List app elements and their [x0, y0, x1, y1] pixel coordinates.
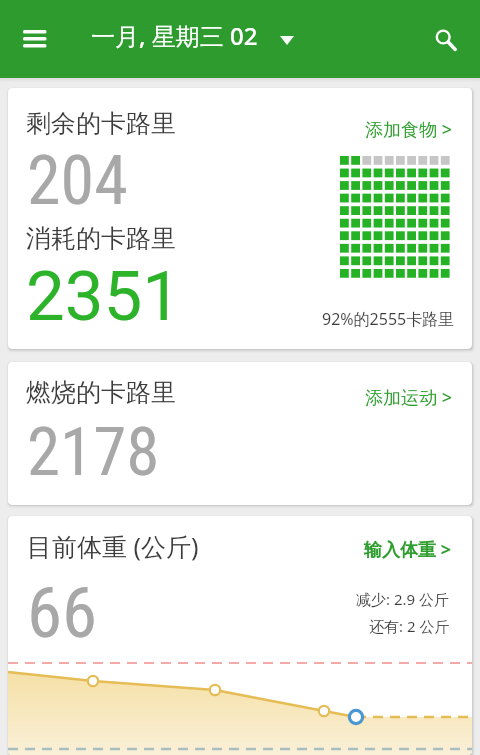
- button[interactable]: [427, 21, 467, 61]
- button[interactable]: 输入体重 >: [364, 537, 451, 562]
- staticText: 剩余的卡路里: [26, 108, 176, 139]
- button[interactable]: 一月, 星期三 02: [91, 0, 258, 78]
- staticText: 204: [27, 141, 128, 221]
- staticText: 减少: 2.9 公斤: [356, 589, 450, 609]
- button[interactable]: 目前体重 (公斤): [8, 516, 472, 755]
- staticText: 2178: [27, 413, 160, 492]
- button[interactable]: 剩余的卡路里: [8, 88, 472, 349]
- button[interactable]: 添加运动 >: [365, 385, 452, 410]
- button[interactable]: 添加食物 >: [365, 117, 452, 142]
- staticText: 66: [27, 571, 98, 654]
- button[interactable]: [14, 24, 56, 54]
- staticText: 还有: 2 公斤: [369, 616, 450, 636]
- staticText: 目前体重 (公斤): [27, 529, 199, 563]
- staticText: 一月, 星期三 02: [91, 19, 258, 52]
- staticText: 2351: [26, 256, 182, 337]
- button[interactable]: 燃烧的卡路里: [8, 362, 472, 505]
- staticText: 消耗的卡路里: [26, 223, 176, 254]
- staticText: 92%的2555卡路里: [322, 308, 455, 330]
- staticText: 燃烧的卡路里: [26, 377, 176, 408]
